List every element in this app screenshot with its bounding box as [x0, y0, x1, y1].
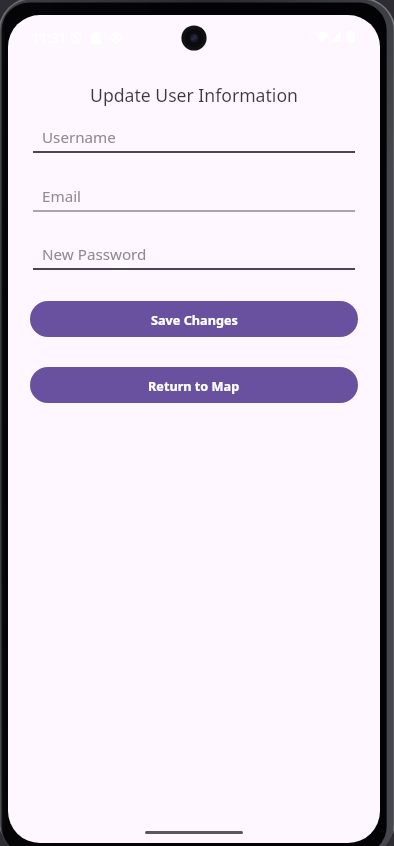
button[interactable]: New Password [33, 246, 355, 270]
staticText: New Password [42, 244, 147, 265]
staticText: Update User Information [8, 83, 380, 107]
staticText: Save Changes [151, 311, 238, 328]
button[interactable]: Return to Map [30, 367, 358, 403]
button[interactable]: Save Changes [30, 301, 358, 337]
staticText: Email [42, 186, 82, 207]
button[interactable]: Username [33, 129, 355, 153]
button[interactable]: Email [33, 188, 355, 212]
staticText: Username [42, 127, 116, 148]
staticText: Return to Map [148, 377, 240, 394]
